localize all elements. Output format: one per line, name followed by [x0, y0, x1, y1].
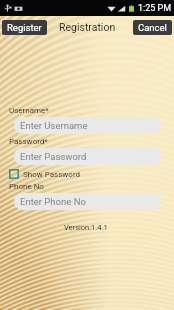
- staticText: Enter Phone No: [20, 196, 86, 207]
- staticText: Cancel: [138, 22, 167, 33]
- staticText: Password*: [9, 137, 48, 146]
- button[interactable]: Cancel: [133, 20, 172, 35]
- button[interactable]: Enter Phone No: [14, 193, 162, 210]
- staticText: Enter Username: [20, 120, 88, 131]
- button[interactable]: Enter Password: [14, 148, 162, 165]
- staticText: Phone No: [9, 182, 44, 191]
- button[interactable]: Register: [2, 20, 47, 35]
- staticText: Registration: [59, 21, 116, 33]
- staticText: Version:1.4.1: [64, 223, 108, 232]
- staticText: Enter Password: [20, 151, 87, 162]
- staticText: Register: [7, 22, 42, 33]
- staticText: Username*: [9, 106, 49, 115]
- staticText: Show Password: [23, 170, 81, 179]
- button[interactable]: Show Password: [9, 169, 81, 179]
- button[interactable]: Enter Username: [14, 117, 162, 134]
- staticText: 1:25 PM: [138, 3, 172, 14]
